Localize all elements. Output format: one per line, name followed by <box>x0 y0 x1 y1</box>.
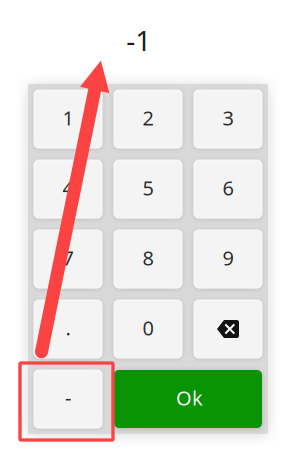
staticText: 4 <box>62 174 73 201</box>
staticText: 7 <box>62 244 73 271</box>
button[interactable]: 0 <box>114 300 182 358</box>
button[interactable]: 1 <box>34 90 102 148</box>
staticText: 1 <box>62 104 73 131</box>
staticText: - <box>65 384 71 411</box>
staticText: Ok <box>176 384 203 411</box>
staticText: -1 <box>126 21 151 59</box>
staticText: 9 <box>222 244 233 271</box>
button[interactable]: Delete <box>194 300 262 358</box>
staticText: 6 <box>222 174 233 201</box>
button[interactable]: . <box>34 300 102 358</box>
button[interactable]: Ok <box>114 370 262 428</box>
staticText: . <box>65 314 70 341</box>
button[interactable]: 6 <box>194 160 262 218</box>
staticText: 2 <box>142 104 153 131</box>
staticText: 8 <box>142 244 153 271</box>
button[interactable]: 2 <box>114 90 182 148</box>
button[interactable]: 7 <box>34 230 102 288</box>
button[interactable]: - <box>34 370 102 428</box>
button[interactable]: 9 <box>194 230 262 288</box>
button[interactable]: 4 <box>34 160 102 218</box>
staticText: 3 <box>222 104 233 131</box>
button[interactable]: 3 <box>194 90 262 148</box>
staticText: 0 <box>142 314 153 341</box>
button[interactable]: 8 <box>114 230 182 288</box>
staticText: 5 <box>142 174 153 201</box>
button[interactable]: 5 <box>114 160 182 218</box>
